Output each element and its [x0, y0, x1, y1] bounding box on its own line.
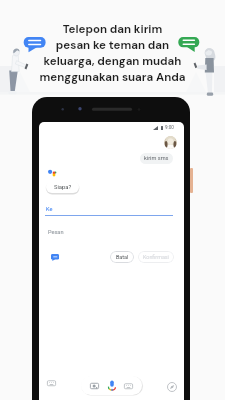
staticText: Telepon dan kirim pesan ke teman dan kel… — [0, 22, 225, 85]
staticText: Konfirmasi — [143, 254, 169, 260]
staticText: Ke — [46, 206, 53, 213]
button[interactable]: Batal — [110, 251, 134, 263]
button[interactable]: Profile — [164, 136, 177, 149]
staticText: Siapa? — [54, 184, 72, 191]
button[interactable]: Explore — [167, 382, 177, 392]
button[interactable]: Konfirmasi — [138, 251, 174, 263]
button[interactable]: Keyboard — [124, 382, 133, 390]
staticText: kirim sms — [144, 155, 169, 162]
button[interactable]: Voice search — [108, 380, 116, 391]
button[interactable]: Google Lens — [90, 382, 99, 390]
staticText: Pesan — [48, 229, 64, 236]
staticText: 9:00 — [165, 125, 174, 130]
button[interactable]: Keyboard — [47, 379, 56, 387]
staticText: Batal — [116, 254, 129, 260]
